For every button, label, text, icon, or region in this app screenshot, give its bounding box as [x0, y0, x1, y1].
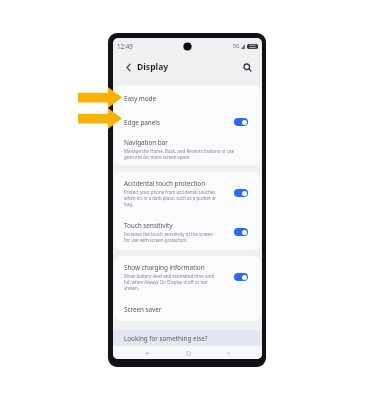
staticText: 5G [233, 43, 240, 50]
staticText: 12:49 [117, 42, 133, 50]
staticText: Screen saver [124, 305, 248, 314]
button[interactable]: Recents [141, 347, 153, 359]
button[interactable]: Screen saver [114, 298, 261, 321]
button[interactable]: Navigation bar [114, 133, 261, 165]
button[interactable]: Accidental touch protection [114, 172, 261, 214]
staticText: bag. [124, 201, 134, 207]
staticText: Show charging information [124, 263, 205, 272]
staticText: gestures for more screen space [124, 154, 190, 160]
button[interactable]: Search [240, 60, 255, 75]
staticText: Show battery level and estimated time un… [124, 273, 215, 279]
button[interactable]: Toggle [234, 118, 248, 126]
staticText: when it's in a dark place, such as a poc… [124, 195, 217, 201]
staticText: Increase the touch sensitivity of the sc… [124, 231, 213, 237]
button[interactable]: Edge panels [114, 111, 261, 133]
staticText: Edge panels [124, 118, 234, 127]
button[interactable]: Easy mode [114, 85, 261, 111]
staticText: Touch sensitivity [124, 221, 173, 230]
staticText: Easy mode [124, 94, 248, 103]
staticText: Protect your phone from accidental touch… [124, 189, 216, 195]
button[interactable]: Show charging information [114, 256, 261, 298]
staticText: Navigation bar [124, 138, 168, 147]
button[interactable]: Back [121, 60, 136, 75]
button[interactable]: Toggle [234, 273, 248, 281]
button[interactable]: Back [222, 347, 234, 359]
button[interactable]: Home [182, 347, 194, 359]
staticText: for use with screen protectors. [124, 237, 188, 243]
staticText: shown. [124, 285, 139, 291]
staticText: Manage the Home, Back, and Recents butto… [124, 148, 235, 154]
staticText: Looking for something else? [124, 334, 208, 343]
staticText: Accidental touch protection [124, 179, 206, 188]
button[interactable]: Toggle [234, 228, 248, 236]
button[interactable]: Touch sensitivity [114, 214, 261, 250]
staticText: Display [137, 61, 169, 73]
button[interactable]: Toggle [234, 189, 248, 197]
staticText: full when Always On Display is off or no… [124, 279, 208, 285]
